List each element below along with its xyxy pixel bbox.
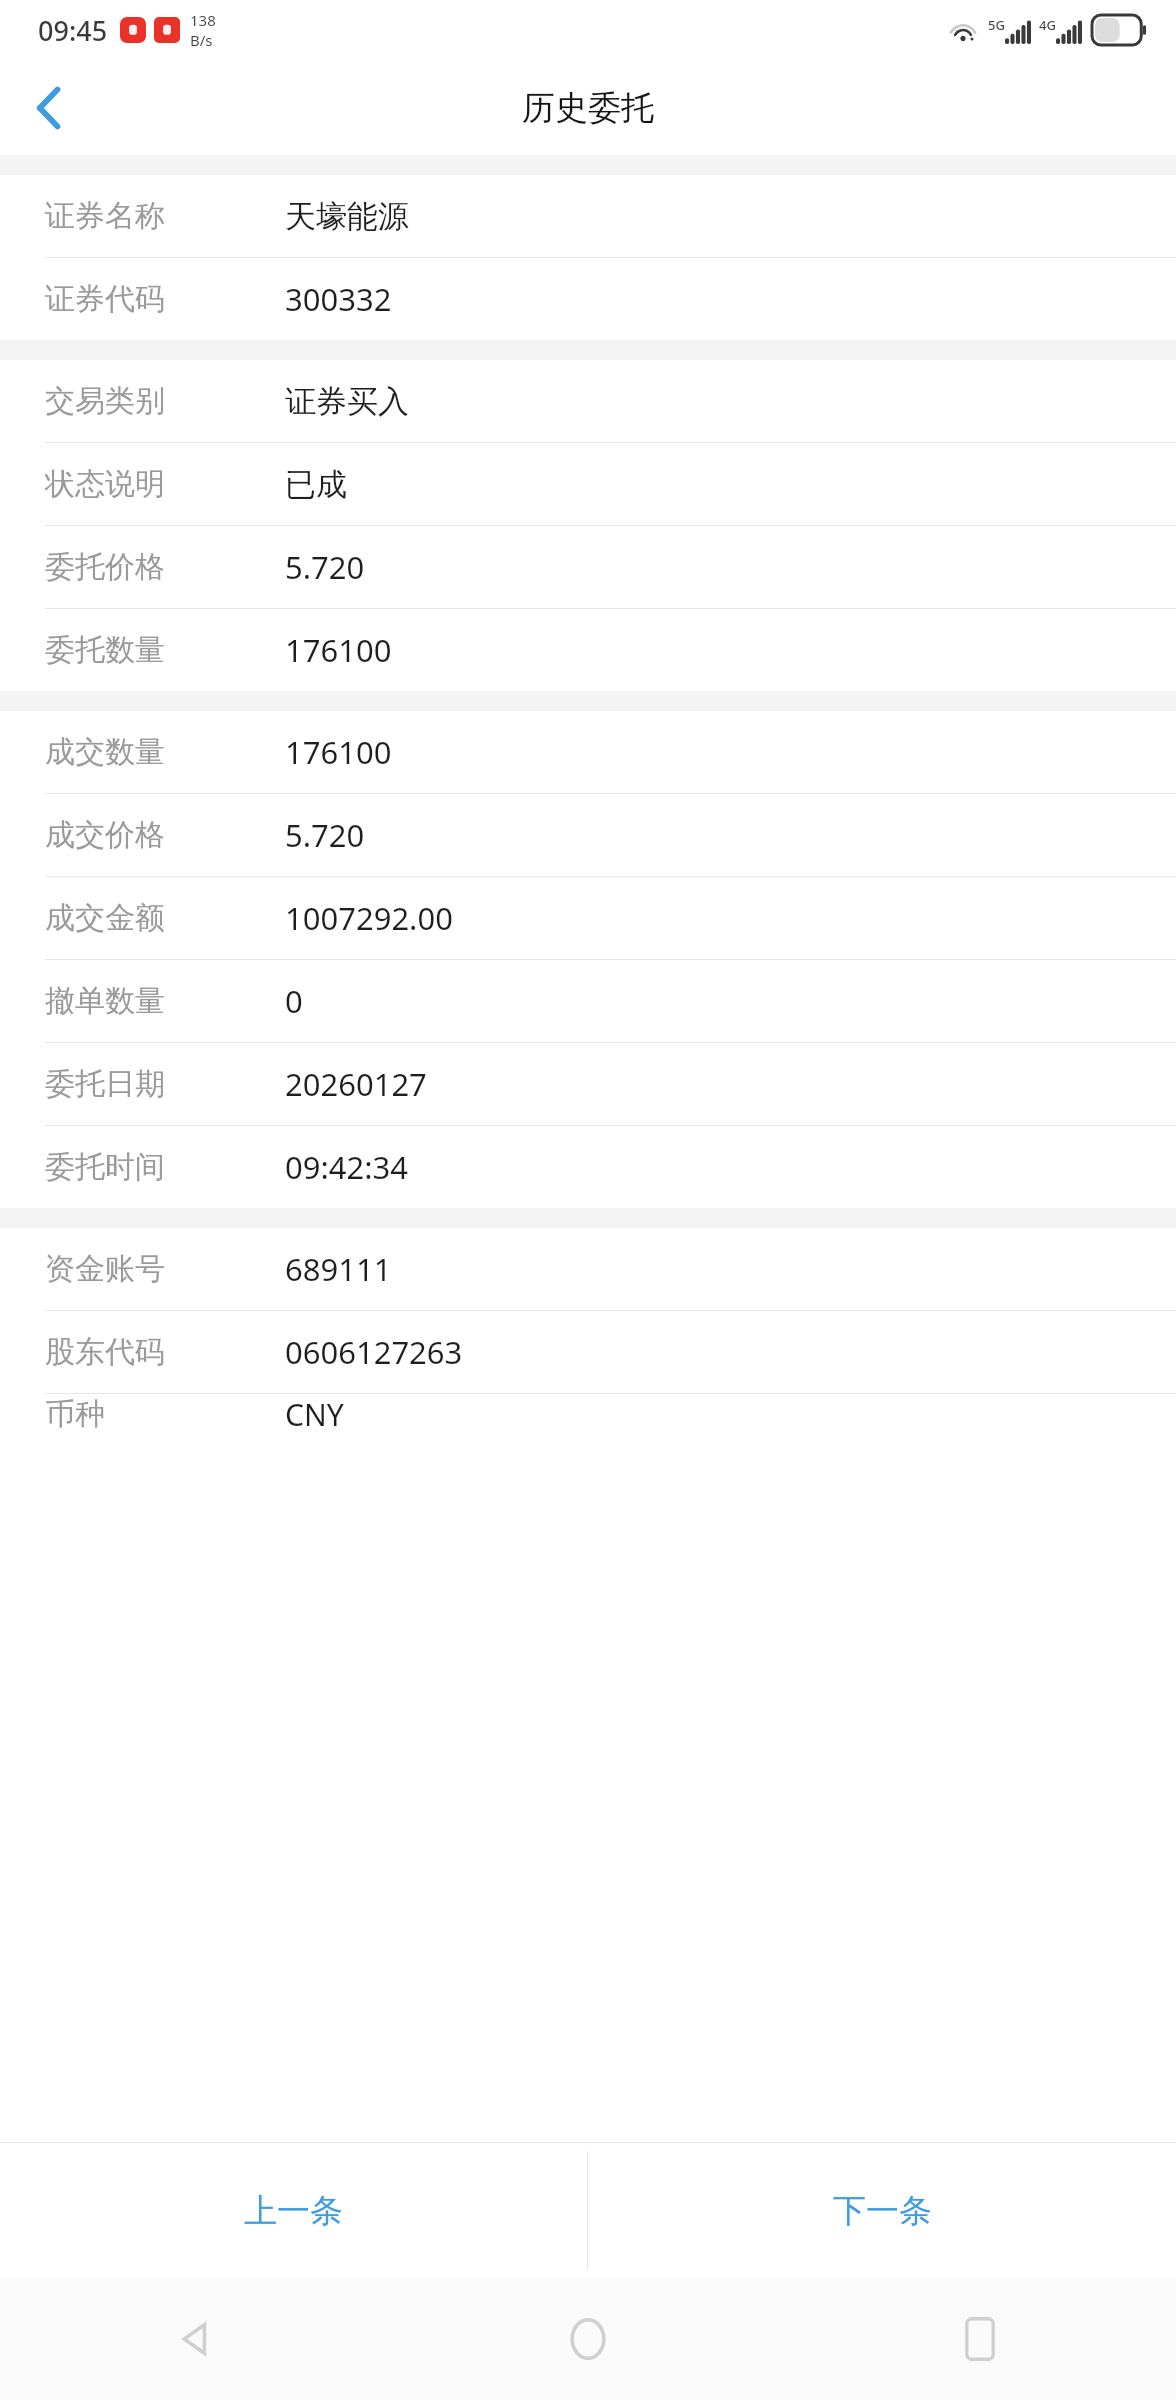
button[interactable]: 成交数量 [0,711,1176,793]
button[interactable]: 成交价格 [0,794,1176,876]
staticText: 0 [285,980,303,1022]
staticText: 成交金额 [45,899,285,937]
staticText: 09:45 [38,12,108,49]
staticText: 状态说明 [45,465,285,503]
staticText: 委托日期 [45,1065,285,1103]
button[interactable]: 状态说明 [0,443,1176,525]
button[interactable]: 委托数量 [0,609,1176,691]
staticText: 交易类别 [45,382,285,420]
staticText: 股东代码 [45,1333,285,1371]
staticText: 5.720 [285,546,365,588]
staticText: 证券买入 [285,382,409,421]
button[interactable]: Back [0,2278,392,2400]
staticText: 0606127263 [285,1331,463,1373]
staticText: 委托价格 [45,548,285,586]
staticText: 176100 [285,629,392,671]
staticText: 20260127 [285,1063,427,1105]
staticText: 5.720 [285,814,365,856]
staticText: CNY [285,1394,344,1434]
button[interactable]: 委托时间 [0,1126,1176,1208]
button[interactable]: 股东代码 [0,1311,1176,1393]
staticText: 天壕能源 [285,197,409,236]
button[interactable]: 撤单数量 [0,960,1176,1042]
staticText: 证券代码 [45,280,285,318]
button[interactable]: Recent apps [784,2278,1176,2400]
button[interactable]: Home [392,2278,784,2400]
staticText: 资金账号 [45,1250,285,1288]
staticText: B/s [190,30,213,50]
staticText: 成交数量 [45,733,285,771]
staticText: 已成 [285,465,347,504]
staticText: 历史委托 [522,87,654,129]
staticText: 689111 [285,1248,392,1290]
button[interactable]: 交易类别 [0,360,1176,442]
button[interactable]: 资金账号 [0,1228,1176,1310]
staticText: 成交价格 [45,816,285,854]
staticText: 09:42:34 [285,1146,409,1188]
staticText: 币种 [45,1395,285,1433]
button[interactable]: 上一条 [0,2143,587,2278]
staticText: 委托时间 [45,1148,285,1186]
staticText: 5G [988,16,1005,34]
staticText: 上一条 [244,2190,343,2232]
button[interactable]: 委托日期 [0,1043,1176,1125]
staticText: 撤单数量 [45,982,285,1020]
staticText: 138 [190,10,216,30]
staticText: 下一条 [833,2190,932,2232]
staticText: 证券名称 [45,197,285,235]
button[interactable]: 委托价格 [0,526,1176,608]
button[interactable]: 证券名称 [0,175,1176,257]
staticText: 委托数量 [45,631,285,669]
button[interactable]: 证券代码 [0,258,1176,340]
button[interactable]: 成交金额 [0,877,1176,959]
staticText: 176100 [285,731,392,773]
staticText: 300332 [285,278,392,320]
staticText: 1007292.00 [285,897,453,939]
button[interactable]: 下一条 [588,2143,1176,2278]
staticText: 4G [1039,16,1056,34]
button[interactable]: Back [0,60,96,155]
